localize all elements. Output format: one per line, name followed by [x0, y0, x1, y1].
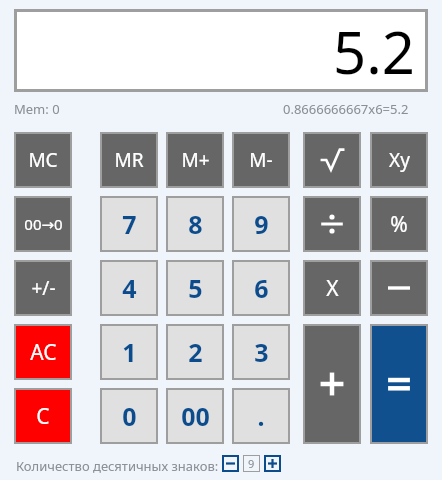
- staticText: MC: [28, 147, 58, 173]
- button[interactable]: MC: [16, 134, 70, 186]
- staticText: 2: [188, 335, 203, 369]
- staticText: X: [326, 274, 339, 303]
- button[interactable]: Divide: [305, 198, 359, 250]
- staticText: Mem: 0: [14, 100, 60, 118]
- button[interactable]: +/-: [16, 262, 70, 314]
- button[interactable]: 0: [102, 390, 156, 442]
- button[interactable]: C: [16, 390, 70, 442]
- button[interactable]: Xy: [372, 134, 426, 186]
- staticText: 0.8666666667x6=5.2: [283, 100, 409, 118]
- button[interactable]: %: [372, 198, 426, 250]
- button[interactable]: 4: [102, 262, 156, 314]
- button[interactable]: 8: [168, 198, 222, 250]
- staticText: 3: [254, 335, 269, 369]
- button[interactable]: 7: [102, 198, 156, 250]
- button[interactable]: .: [234, 390, 288, 442]
- button[interactable]: Minus: [372, 262, 426, 314]
- staticText: 6: [254, 271, 269, 305]
- staticText: 00: [181, 399, 210, 433]
- staticText: .: [257, 399, 265, 433]
- staticText: %: [390, 210, 408, 239]
- staticText: 9: [248, 456, 255, 471]
- button[interactable]: 5: [168, 262, 222, 314]
- staticText: 9: [254, 207, 269, 241]
- staticText: 00→0: [24, 214, 63, 234]
- button[interactable]: 00→0: [16, 198, 70, 250]
- button[interactable]: 00: [168, 390, 222, 442]
- button[interactable]: 2: [168, 326, 222, 378]
- staticText: M-: [249, 147, 273, 173]
- staticText: 8: [188, 207, 203, 241]
- staticText: AC: [30, 338, 57, 367]
- button[interactable]: 9: [234, 198, 288, 250]
- button[interactable]: Increase: [264, 455, 281, 472]
- button[interactable]: MR: [102, 134, 156, 186]
- button[interactable]: M+: [168, 134, 222, 186]
- staticText: 5.2: [333, 12, 415, 89]
- button[interactable]: Decrease: [222, 455, 239, 472]
- staticText: 5: [188, 271, 203, 305]
- staticText: 1: [122, 335, 137, 369]
- staticText: 0: [122, 399, 137, 433]
- button[interactable]: X: [305, 262, 359, 314]
- staticText: 4: [122, 271, 137, 305]
- staticText: C: [36, 402, 50, 431]
- staticText: Xy: [389, 147, 410, 173]
- staticText: +/-: [31, 275, 56, 301]
- staticText: 7: [122, 207, 137, 241]
- staticText: MR: [114, 147, 144, 173]
- button[interactable]: 6: [234, 262, 288, 314]
- staticText: Количество десятичных знаков:: [16, 457, 219, 475]
- staticText: M+: [181, 147, 210, 173]
- button[interactable]: Plus: [305, 326, 359, 442]
- button[interactable]: 1: [102, 326, 156, 378]
- button[interactable]: M-: [234, 134, 288, 186]
- button[interactable]: 3: [234, 326, 288, 378]
- button[interactable]: Square root: [305, 134, 359, 186]
- button[interactable]: Equals: [372, 326, 426, 442]
- button[interactable]: AC: [16, 326, 70, 378]
